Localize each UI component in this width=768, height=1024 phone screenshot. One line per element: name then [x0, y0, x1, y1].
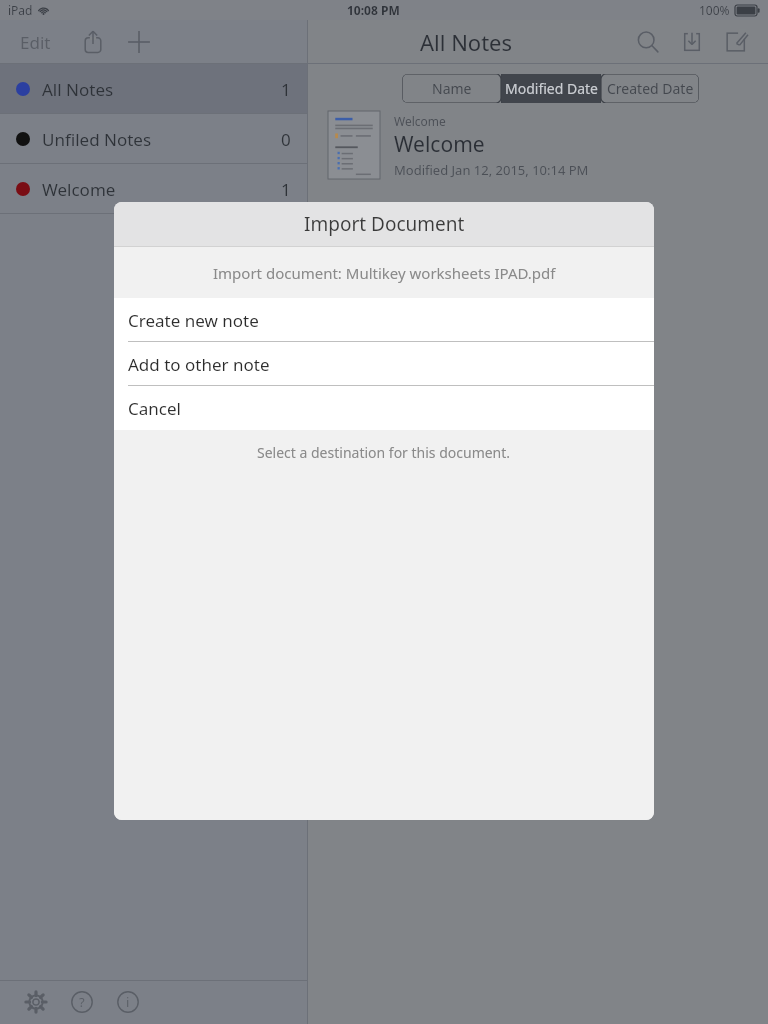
- staticText: Modified Jan 12, 2015, 10:14 PM: [394, 161, 589, 179]
- staticText: 0: [281, 128, 291, 151]
- button[interactable]: Name: [402, 74, 501, 103]
- button[interactable]: Unfiled Notes: [0, 114, 307, 164]
- button[interactable]: Created Date: [601, 74, 699, 103]
- button[interactable]: Edit: [14, 23, 57, 62]
- button[interactable]: Settings: [16, 982, 56, 1022]
- button[interactable]: Share: [71, 20, 115, 64]
- staticText: 1: [281, 78, 291, 101]
- staticText: All Notes: [42, 78, 114, 101]
- staticText: Import Document: [304, 211, 465, 237]
- staticText: Modified Date: [505, 79, 598, 98]
- button[interactable]: Add note: [117, 20, 161, 64]
- button[interactable]: Help: [62, 982, 102, 1022]
- button[interactable]: Compose: [714, 20, 758, 64]
- staticText: Welcome: [394, 113, 446, 129]
- staticText: All Notes: [420, 27, 513, 57]
- staticText: 100%: [699, 2, 730, 18]
- staticText: 10:08 PM: [347, 2, 400, 18]
- staticText: iPad: [8, 2, 33, 18]
- staticText: 1: [281, 178, 291, 201]
- staticText: Create new note: [128, 309, 259, 332]
- staticText: Welcome: [394, 130, 485, 159]
- button[interactable]: Import document: [670, 20, 714, 64]
- staticText: Cancel: [128, 397, 181, 420]
- button[interactable]: Search: [626, 20, 670, 64]
- staticText: i: [126, 993, 130, 1011]
- staticText: ?: [79, 993, 85, 1011]
- staticText: Import document: Multikey worksheets IPA…: [213, 263, 556, 283]
- staticText: Edit: [20, 31, 51, 54]
- button[interactable]: Welcome: [308, 103, 768, 183]
- button[interactable]: Info: [108, 982, 148, 1022]
- staticText: Add to other note: [128, 353, 270, 376]
- button[interactable]: Cancel: [114, 386, 654, 430]
- button[interactable]: Add to other note: [114, 342, 654, 386]
- staticText: Select a destination for this document.: [257, 443, 511, 462]
- button[interactable]: Welcome: [0, 164, 307, 214]
- button[interactable]: Modified Date: [502, 74, 600, 103]
- button[interactable]: Create new note: [114, 298, 654, 342]
- button[interactable]: All Notes: [0, 64, 307, 114]
- staticText: Name: [432, 79, 472, 98]
- staticText: Unfiled Notes: [42, 128, 152, 151]
- staticText: Created Date: [607, 79, 694, 98]
- staticText: Welcome: [42, 178, 116, 201]
